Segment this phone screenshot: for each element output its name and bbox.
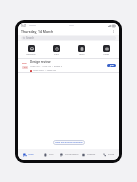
button[interactable]: Phone	[99, 149, 119, 160]
button[interactable]: Home	[18, 149, 39, 160]
staticText: Search	[26, 36, 35, 40]
staticText: Calls	[49, 153, 54, 156]
button[interactable]: Meetings	[18, 42, 44, 58]
staticText: Acme Corp • Video call	[33, 69, 57, 72]
staticText: Thursday, 14 March	[21, 29, 54, 34]
button[interactable]: Calendar	[79, 149, 99, 160]
staticText: MAR	[22, 62, 27, 65]
button[interactable]: Notes	[94, 42, 119, 58]
staticText: Conversations	[65, 153, 79, 156]
button[interactable]: Search	[21, 36, 116, 40]
staticText: Design review	[30, 60, 51, 64]
staticText: 9:41	[21, 24, 27, 28]
staticText: View upcoming meetings	[55, 141, 83, 144]
button[interactable]: Calls	[44, 42, 69, 58]
staticText: Home	[28, 153, 34, 156]
button[interactable]: Join	[107, 64, 116, 67]
staticText: Join	[110, 64, 114, 67]
staticText: Notes	[103, 53, 110, 56]
button[interactable]: MAR	[18, 59, 119, 72]
staticText: Calls	[54, 53, 59, 56]
staticText: Calendar	[87, 153, 96, 156]
staticText: 10:00 AM - 11:00 AM • Room 4	[30, 65, 62, 68]
button[interactable]: Conversations	[59, 149, 79, 160]
button[interactable]: Calls	[39, 149, 59, 160]
staticText: Meetings	[26, 53, 36, 56]
button[interactable]: View upcoming meetings	[53, 140, 85, 145]
staticText: Tasks	[79, 53, 85, 56]
staticText: 14	[24, 66, 27, 69]
button[interactable]: Tasks	[69, 42, 94, 58]
button[interactable]: More options	[111, 29, 116, 34]
staticText: Phone	[108, 153, 115, 156]
